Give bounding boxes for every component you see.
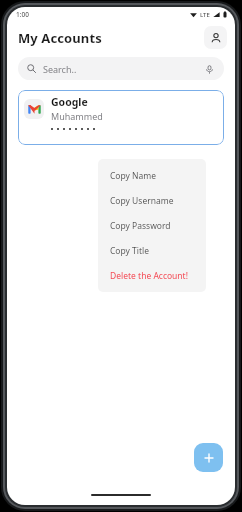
- button[interactable]: Copy Title: [98, 238, 206, 263]
- staticText: My Accounts: [18, 29, 102, 47]
- button[interactable]: Copy Username: [98, 188, 206, 213]
- staticText: Search..: [43, 63, 77, 75]
- button[interactable]: Search..: [18, 57, 224, 80]
- staticText: 1:00: [16, 10, 29, 19]
- button[interactable]: Profile: [204, 26, 227, 49]
- staticText: Copy Title: [110, 245, 150, 257]
- staticText: LTE: [200, 11, 210, 19]
- staticText: Muhammed: [51, 110, 103, 122]
- button[interactable]: Add account: [194, 443, 223, 472]
- staticText: Google: [51, 95, 88, 109]
- staticText: Copy Name: [110, 170, 157, 182]
- staticText: Copy Password: [110, 220, 171, 232]
- staticText: Delete the Account!: [110, 270, 188, 282]
- button[interactable]: Voice search: [203, 63, 215, 75]
- staticText: Copy Username: [110, 195, 174, 207]
- button[interactable]: Copy Password: [98, 213, 206, 238]
- button[interactable]: Delete the Account!: [98, 263, 206, 288]
- button[interactable]: Google: [18, 90, 224, 145]
- button[interactable]: Copy Name: [98, 163, 206, 188]
